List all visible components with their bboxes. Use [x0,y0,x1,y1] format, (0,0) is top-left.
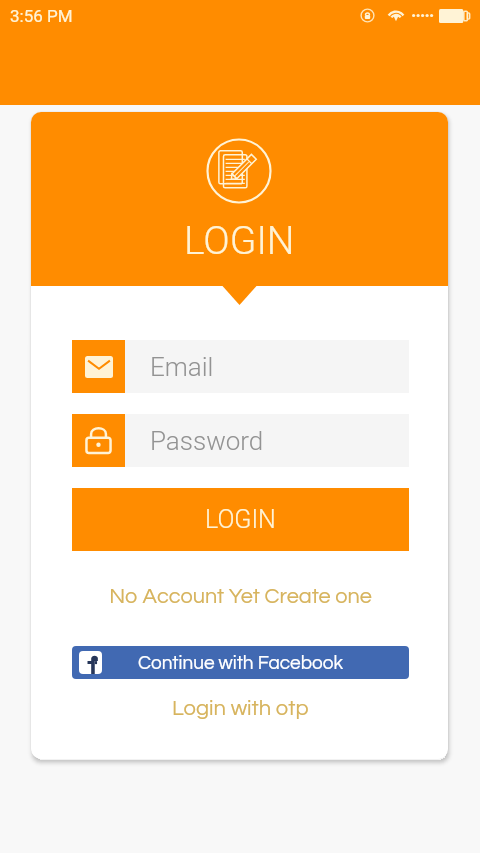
staticText: Password [150,426,264,456]
staticText: Email [150,352,214,382]
staticText: Login with otp [172,697,309,720]
staticText: Continue with Facebook [138,653,343,673]
button[interactable]: Login with otp [72,693,409,723]
button[interactable]: Continue with Facebook [72,646,409,679]
button[interactable]: Email [72,340,409,393]
staticText: 3:56 PM [10,6,73,26]
button[interactable]: LOGIN [72,488,409,551]
staticText: No Account Yet Create one [109,585,372,607]
button[interactable]: Password [72,414,409,467]
staticText: LOGIN [184,218,295,264]
staticText: LOGIN [205,505,276,534]
button[interactable]: No Account Yet Create one [72,581,409,611]
